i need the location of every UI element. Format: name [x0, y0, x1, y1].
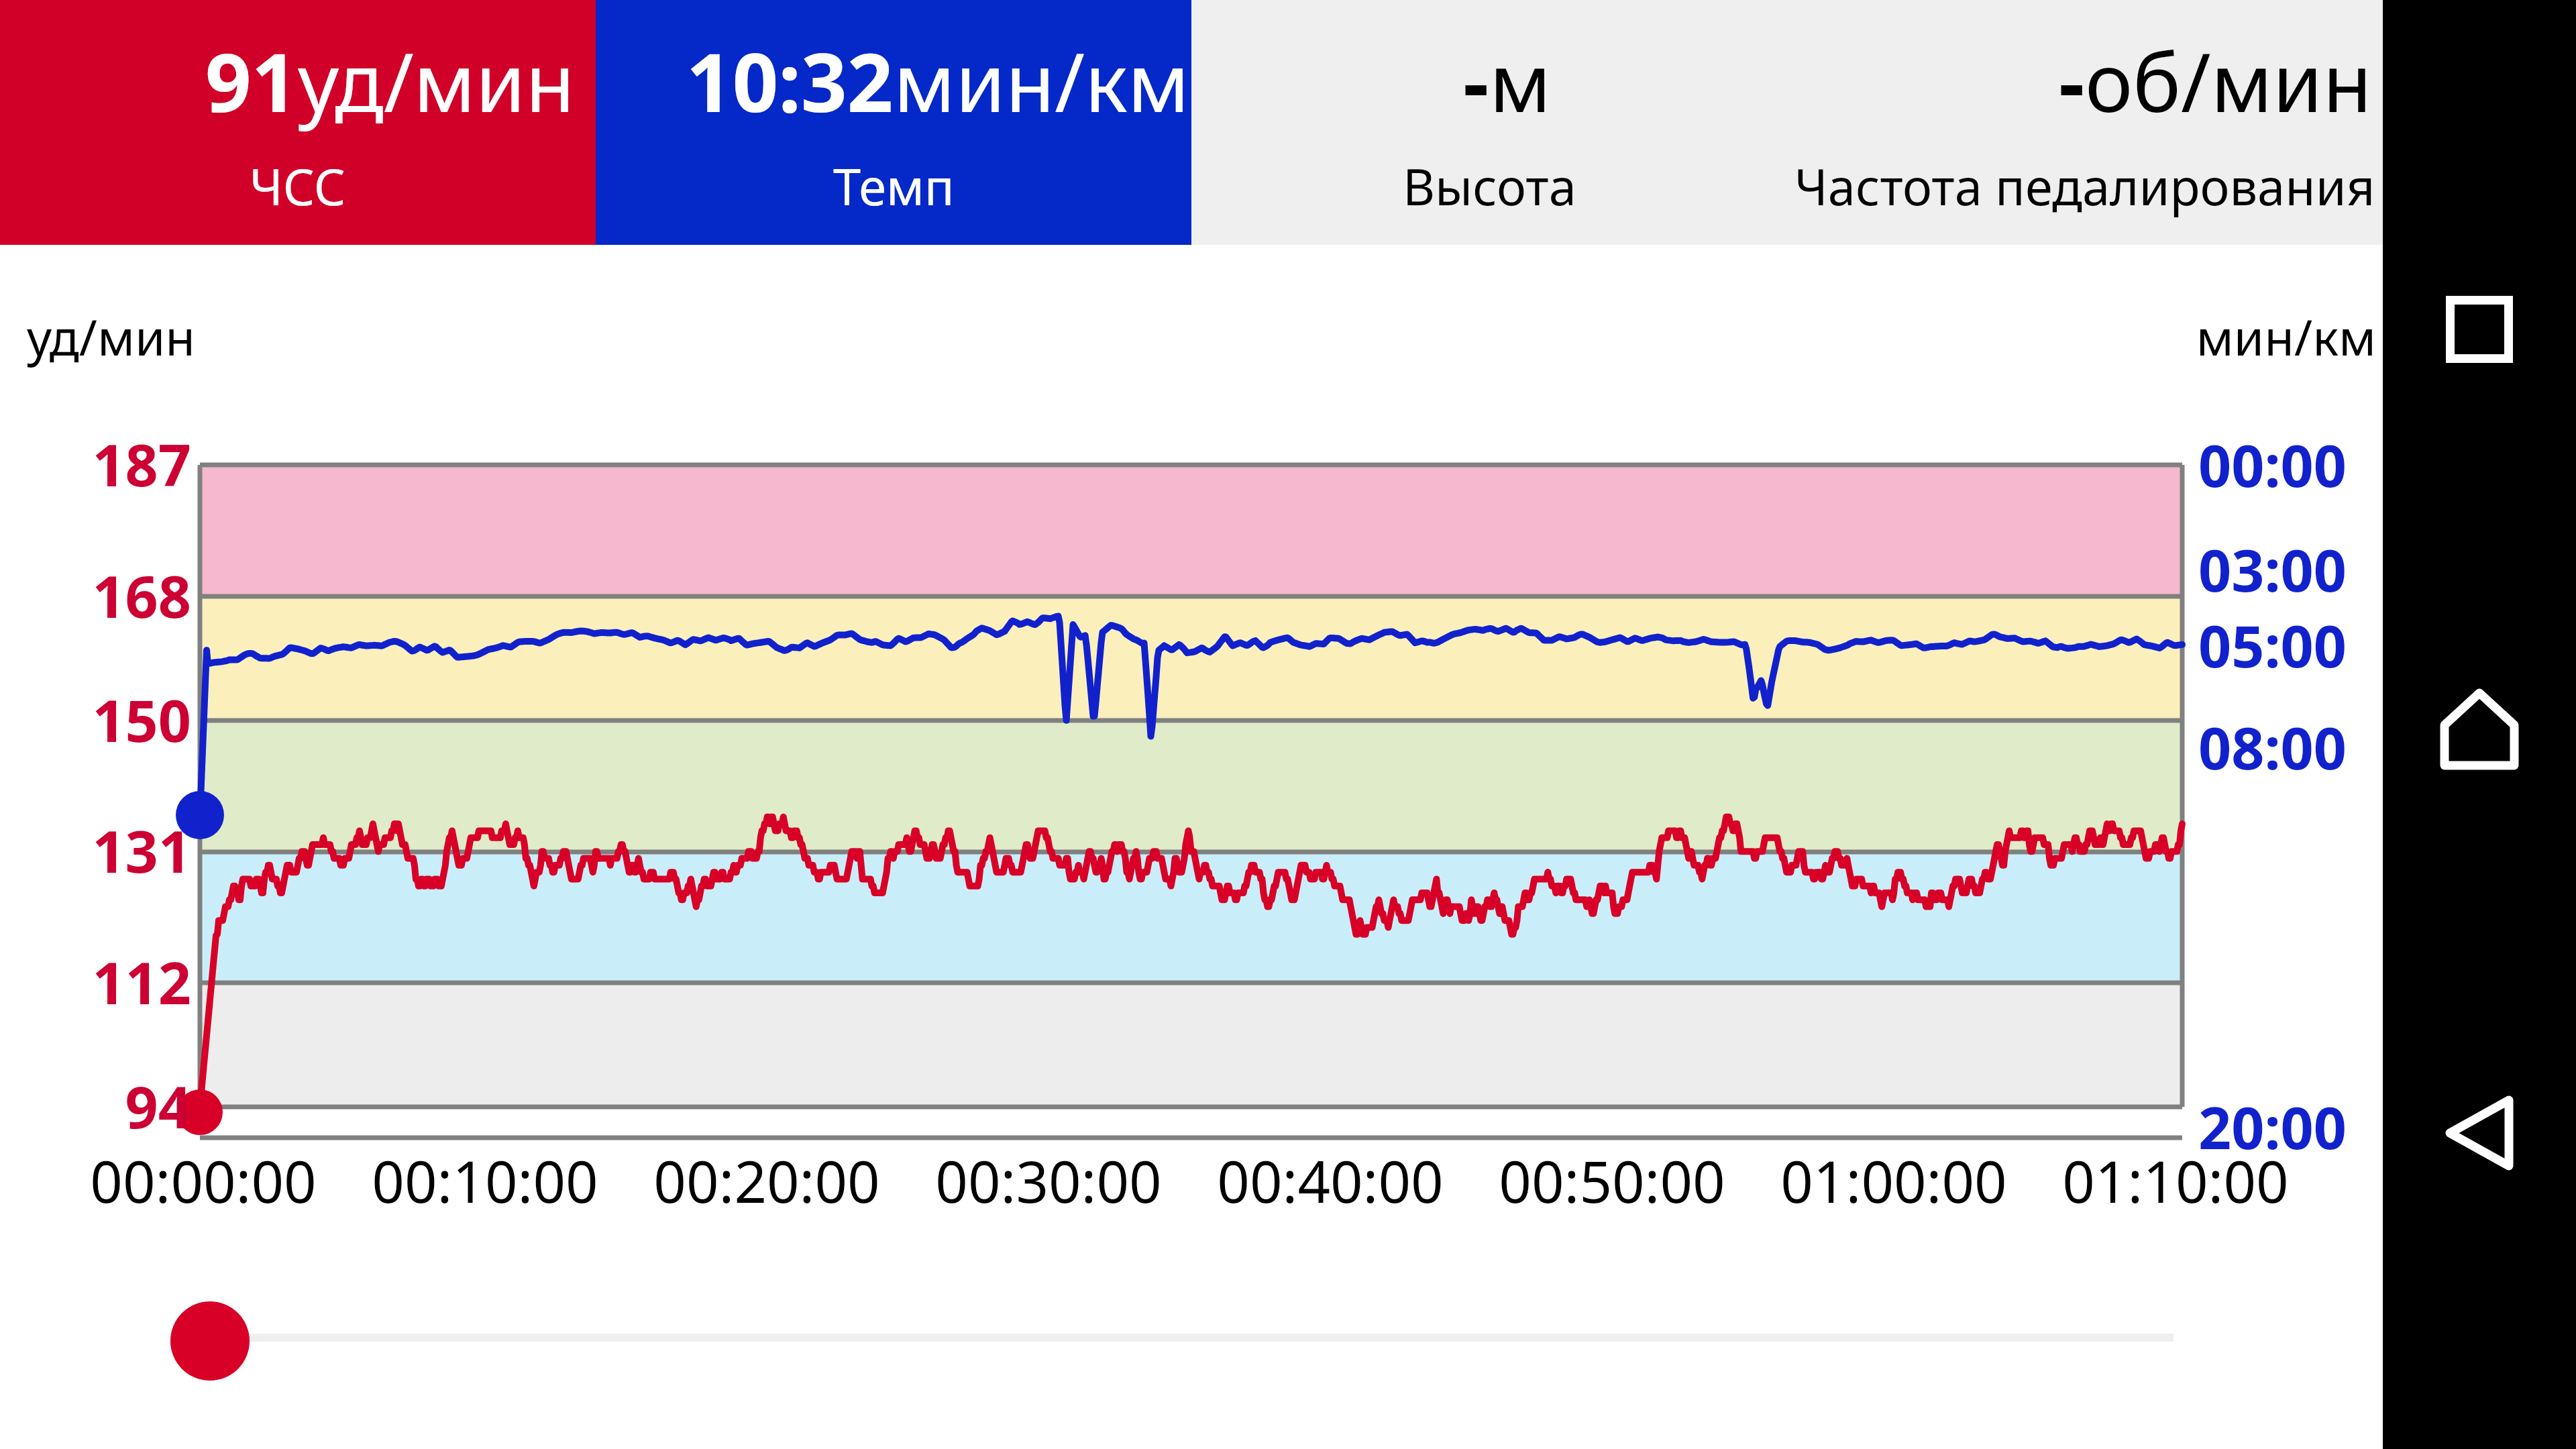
staticText: уд/мин: [27, 303, 196, 370]
button[interactable]: Recents: [2415, 265, 2544, 394]
button[interactable]: -: [1787, 0, 2383, 245]
staticText: Высота: [1403, 152, 1576, 220]
staticText: 00:00:00: [90, 1142, 317, 1220]
button[interactable]: -: [1191, 0, 1787, 245]
staticText: 03:00: [2198, 530, 2347, 608]
staticText: 01:00:00: [1780, 1142, 2007, 1220]
staticText: 131: [92, 811, 191, 890]
button[interactable]: Scrub through workout: [170, 1261, 2204, 1421]
staticText: ЧСС: [250, 152, 346, 220]
staticText: 01:10:00: [2062, 1142, 2289, 1220]
staticText: Частота педалирования: [1794, 152, 2375, 220]
staticText: 10:32: [686, 26, 894, 136]
staticText: 00:50:00: [1499, 1142, 1725, 1220]
staticText: 112: [92, 943, 191, 1021]
staticText: -: [2059, 26, 2085, 136]
staticText: уд/мин: [298, 26, 575, 136]
staticText: 150: [92, 680, 191, 759]
staticText: мин/км: [894, 26, 1189, 136]
button[interactable]: 91: [0, 0, 596, 245]
staticText: 00:40:00: [1217, 1142, 1444, 1220]
staticText: 91: [205, 26, 298, 136]
staticText: -: [1463, 26, 1489, 136]
staticText: 00:00: [2198, 425, 2347, 504]
staticText: 08:00: [2198, 708, 2347, 786]
button[interactable]: 10:32: [596, 0, 1191, 245]
staticText: об/мин: [2085, 26, 2372, 136]
staticText: 187: [92, 425, 191, 503]
staticText: 00:20:00: [653, 1142, 880, 1220]
staticText: Темп: [833, 152, 955, 220]
staticText: 00:10:00: [372, 1142, 598, 1220]
staticText: м: [1489, 26, 1552, 136]
button[interactable]: Home: [2415, 665, 2544, 794]
staticText: 00:30:00: [935, 1142, 1162, 1220]
button[interactable]: Back: [2415, 1069, 2544, 1197]
staticText: 20:00: [2198, 1087, 2347, 1166]
staticText: 94: [125, 1067, 191, 1145]
staticText: мин/км: [2196, 303, 2376, 370]
staticText: 05:00: [2198, 606, 2347, 684]
staticText: 168: [92, 556, 191, 635]
